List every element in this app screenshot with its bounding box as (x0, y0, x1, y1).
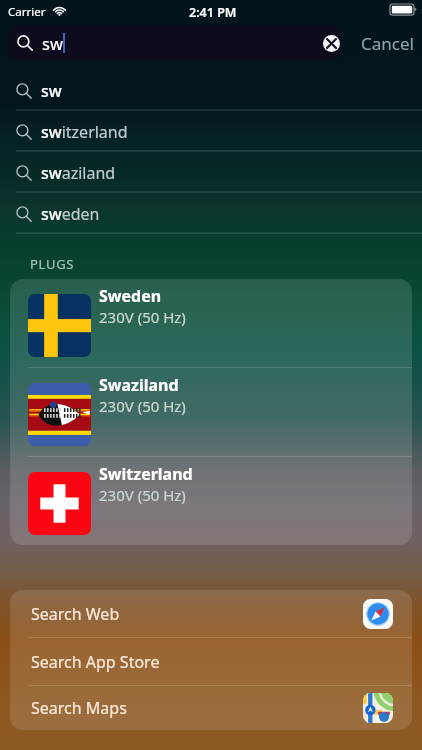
staticText: switzerland (41, 121, 128, 143)
staticText: 2:41 PM (189, 4, 237, 21)
staticText: Search Web (31, 603, 120, 625)
button[interactable]: Search App Store (10, 638, 412, 685)
button[interactable]: Cancel (361, 32, 414, 55)
button[interactable]: Clear text (323, 35, 340, 52)
staticText: Cancel (361, 32, 414, 55)
button[interactable]: Search Maps (10, 686, 412, 730)
staticText: Swaziland (99, 374, 179, 396)
button[interactable]: Search Web (10, 590, 412, 637)
button[interactable]: Switzerland (10, 457, 412, 545)
button[interactable]: switzerland (0, 111, 422, 152)
button[interactable]: sweden (0, 193, 422, 234)
staticText: Sweden (99, 285, 162, 307)
button[interactable]: sw (0, 70, 422, 111)
staticText: 230V (50 Hz) (99, 485, 186, 505)
staticText: Search Maps (31, 697, 127, 719)
staticText: sw (41, 80, 62, 102)
staticText: sweden (41, 203, 100, 225)
staticText: 230V (50 Hz) (99, 396, 186, 416)
button[interactable]: Swaziland (10, 368, 412, 456)
button[interactable]: swaziland (0, 152, 422, 193)
staticText: sw (42, 32, 63, 54)
staticText: PLUGS (30, 255, 75, 273)
staticText: Search App Store (31, 651, 160, 673)
staticText: 230V (50 Hz) (99, 307, 186, 327)
button[interactable]: sw (8, 26, 341, 60)
staticText: Switzerland (99, 463, 193, 485)
button[interactable]: Sweden (10, 279, 412, 367)
staticText: swaziland (41, 162, 116, 184)
staticText: Carrier (8, 4, 46, 20)
